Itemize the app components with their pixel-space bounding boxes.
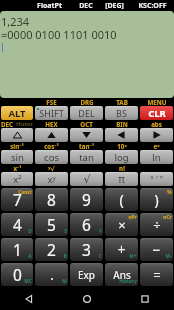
staticText: 1,234 =0000 0100 1101 0010 <box>1 14 117 42</box>
staticText: . <box>50 265 54 284</box>
staticText: − <box>152 240 161 259</box>
button[interactable]: π <box>105 172 138 186</box>
staticText: HEX <box>45 120 58 128</box>
staticText: Ans <box>113 268 131 282</box>
button[interactable]: 5 <box>35 213 68 236</box>
button[interactable]: Down <box>70 128 103 142</box>
staticText: M <box>62 278 67 285</box>
staticText: 1 <box>13 239 22 260</box>
button[interactable]: ( <box>105 188 138 211</box>
button[interactable]: BS <box>105 106 138 120</box>
button[interactable]: + <box>105 238 138 261</box>
staticText: nPr <box>128 214 137 221</box>
staticText: 8 <box>47 189 56 210</box>
staticText: CLR <box>148 107 166 120</box>
button[interactable]: ALT <box>1 106 33 120</box>
staticText: Exp <box>78 268 95 282</box>
staticText: FSE <box>46 98 57 106</box>
staticText: x⁻¹ <box>13 164 22 172</box>
button[interactable]: 1 <box>1 238 33 261</box>
button[interactable]: sin <box>1 150 33 164</box>
staticText: MC <box>24 278 32 285</box>
staticText: tan⁻¹ <box>79 142 94 150</box>
staticText: ) <box>154 190 159 209</box>
staticText: sin <box>11 151 24 164</box>
button[interactable]: 3 <box>70 238 103 261</box>
staticText: BIN <box>116 120 128 128</box>
staticText: History <box>119 278 137 285</box>
button[interactable]: xʸ <box>35 172 68 186</box>
button[interactable]: 2 <box>35 238 68 261</box>
staticText: tan <box>79 151 94 164</box>
button[interactable]: √ <box>70 172 103 186</box>
staticText: √ <box>83 173 91 186</box>
button[interactable]: 7 <box>1 188 33 211</box>
button[interactable]: Ans <box>105 263 138 286</box>
staticText: abs <box>151 120 162 128</box>
button[interactable]: = <box>140 263 173 286</box>
button[interactable]: cos <box>35 150 68 164</box>
staticText: B <box>63 253 67 260</box>
button[interactable]: Scroll up outline <box>1 128 33 142</box>
button[interactable]: 9 <box>70 188 103 211</box>
button[interactable]: ln <box>140 150 173 164</box>
button[interactable]: 0 <box>1 263 33 286</box>
button[interactable]: Back <box>0 288 58 310</box>
button[interactable]: SHIFT <box>35 106 68 120</box>
staticText: sin⁻¹ <box>10 142 24 150</box>
staticText: × <box>118 216 126 234</box>
staticText: ° ′ ″ <box>150 174 163 185</box>
button[interactable]: log <box>105 150 138 164</box>
staticText: 4 <box>13 214 22 235</box>
staticText: BS <box>116 107 127 119</box>
staticText: log <box>114 151 129 164</box>
staticText: M+ <box>129 253 137 260</box>
button[interactable]: ° ′ ″ <box>140 172 173 186</box>
button[interactable]: CLR <box>140 106 173 120</box>
button[interactable]: . <box>35 263 68 286</box>
button[interactable]: × <box>105 213 138 236</box>
staticText: + <box>117 240 126 259</box>
staticText: MENU <box>147 98 167 106</box>
button[interactable]: Home <box>58 288 116 310</box>
button[interactable]: ) <box>140 188 173 211</box>
staticText: eˣ <box>153 142 160 150</box>
staticText: DEC <box>1 120 13 128</box>
staticText: 10ˣ <box>117 142 127 150</box>
staticText: 0 <box>13 264 22 285</box>
staticText: nCr <box>163 214 172 221</box>
staticText: ln <box>152 151 161 164</box>
staticText: OCT <box>80 120 93 128</box>
staticText: π <box>118 172 125 186</box>
staticText: cos <box>44 151 59 164</box>
button[interactable]: 6 <box>70 213 103 236</box>
staticText: E <box>64 228 67 235</box>
button[interactable]: ÷ <box>140 213 173 236</box>
staticText: % <box>167 189 172 196</box>
button[interactable]: Up <box>35 128 68 142</box>
button[interactable]: 4 <box>1 213 33 236</box>
button[interactable]: tan <box>70 150 103 164</box>
button[interactable]: DEL <box>70 106 103 120</box>
staticText: n! <box>119 164 125 172</box>
staticText: M- <box>165 253 172 260</box>
button[interactable]: − <box>140 238 173 261</box>
staticText: F <box>99 228 102 235</box>
button[interactable]: 8 <box>35 188 68 211</box>
staticText: TAB <box>116 98 128 106</box>
staticText: [DEG] <box>105 1 124 11</box>
button[interactable]: Recents <box>116 288 174 310</box>
staticText: DRG <box>80 98 94 106</box>
staticText: C <box>98 253 102 260</box>
staticText: History <box>15 120 34 128</box>
staticText: 9 <box>82 189 91 210</box>
staticText: x² <box>13 173 22 186</box>
button[interactable]: Right <box>140 128 173 142</box>
staticText: cos⁻¹ <box>44 142 59 150</box>
staticText: ( <box>119 190 124 209</box>
button[interactable]: Exp <box>70 263 103 286</box>
staticText: DEL <box>78 107 95 119</box>
button[interactable]: Left <box>105 128 138 142</box>
button[interactable]: x² <box>1 172 33 186</box>
staticText: FloatPt <box>37 1 62 11</box>
